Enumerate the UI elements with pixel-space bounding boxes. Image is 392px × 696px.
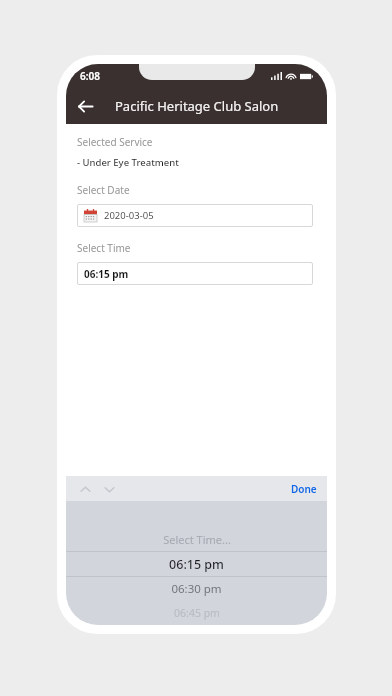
- staticText: 2020-03-05: [104, 209, 154, 222]
- staticText: Done: [291, 482, 317, 496]
- staticText: 06:15 pm: [84, 267, 129, 281]
- staticText: Select Time: [77, 241, 131, 255]
- staticText: - Under Eye Treatment: [77, 156, 179, 169]
- button[interactable]: Back: [66, 88, 104, 124]
- button[interactable]: 06:45 pm: [66, 601, 327, 625]
- staticText: Selected Service: [77, 135, 153, 149]
- staticText: 06:15 pm: [169, 556, 224, 573]
- staticText: 06:45 pm: [174, 606, 220, 620]
- button[interactable]: 06:30 pm: [66, 577, 327, 601]
- button[interactable]: Next field: [100, 480, 118, 498]
- button[interactable]: Select Time...: [66, 527, 327, 551]
- staticText: Select Time...: [163, 532, 231, 547]
- button[interactable]: Previous field: [76, 480, 94, 498]
- button[interactable]: 2020-03-05: [77, 204, 313, 227]
- button[interactable]: Done: [281, 478, 327, 500]
- staticText: 06:30 pm: [171, 581, 222, 597]
- button[interactable]: 06:15 pm: [77, 262, 313, 285]
- staticText: 6:08: [80, 69, 100, 83]
- button[interactable]: 06:15 pm: [66, 552, 327, 576]
- staticText: Select Date: [77, 183, 130, 197]
- staticText: Pacific Heritage Club Salon: [115, 97, 279, 115]
